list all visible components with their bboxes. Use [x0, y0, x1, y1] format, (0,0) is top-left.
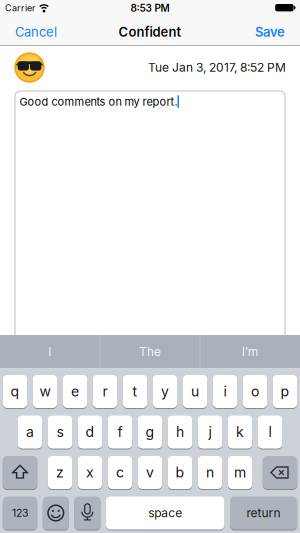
button[interactable]: The	[100, 335, 199, 368]
staticText: a	[26, 423, 34, 440]
button[interactable]: q	[3, 375, 27, 408]
staticText: f	[117, 423, 122, 440]
button[interactable]: l	[258, 415, 282, 448]
button[interactable]: Dictate	[74, 496, 100, 529]
button[interactable]: c	[108, 456, 132, 489]
staticText: I	[48, 344, 51, 359]
button[interactable]: o	[243, 375, 267, 408]
button[interactable]: y	[153, 375, 177, 408]
button[interactable]: I	[0, 335, 99, 368]
staticText: Carrier	[5, 3, 35, 13]
staticText: j	[208, 423, 211, 440]
staticText: r	[102, 383, 107, 400]
button[interactable]: f	[108, 415, 132, 448]
button[interactable]: s	[48, 415, 72, 448]
staticText: i	[223, 383, 226, 400]
staticText: o	[251, 383, 259, 400]
staticText: The	[139, 344, 161, 359]
button[interactable]: j	[198, 415, 222, 448]
staticText: w	[39, 383, 50, 400]
staticText: y	[161, 383, 169, 400]
button[interactable]: 123	[3, 496, 37, 529]
staticText: n	[206, 464, 214, 481]
button[interactable]: k	[228, 415, 252, 448]
button[interactable]: b	[168, 456, 192, 489]
button[interactable]: g	[138, 415, 162, 448]
button[interactable]: a	[18, 415, 42, 448]
staticText: e	[71, 383, 79, 400]
staticText: g	[145, 423, 154, 440]
button[interactable]: t	[123, 375, 147, 408]
staticText: c	[116, 464, 124, 481]
staticText: Good comments on my report.	[19, 95, 177, 108]
button[interactable]: w	[33, 375, 57, 408]
button[interactable]: I’m	[200, 335, 300, 368]
staticText: h	[176, 423, 184, 440]
button[interactable]: h	[168, 415, 192, 448]
button[interactable]: i	[213, 375, 237, 408]
staticText: s	[56, 423, 63, 440]
button[interactable]: d	[78, 415, 102, 448]
button[interactable]: z	[48, 456, 72, 489]
staticText: Tue Jan 3, 2017, 8:52 PM	[148, 60, 286, 75]
button[interactable]: Change mood emoji	[14, 52, 45, 83]
staticText: z	[56, 464, 64, 481]
staticText: Confident	[118, 24, 181, 40]
button[interactable]: space	[106, 496, 224, 529]
staticText: t	[132, 383, 137, 400]
staticText: d	[85, 423, 94, 440]
button[interactable]: return	[230, 496, 297, 529]
staticText: v	[146, 464, 154, 481]
button[interactable]: Emoji	[43, 496, 69, 529]
staticText: x	[86, 464, 94, 481]
staticText: Cancel	[15, 24, 57, 40]
button[interactable]: p	[273, 375, 297, 408]
staticText: m	[234, 464, 246, 481]
staticText: return	[247, 506, 281, 520]
button[interactable]: e	[63, 375, 87, 408]
button[interactable]: Shift	[3, 456, 37, 489]
button[interactable]: m	[228, 456, 252, 489]
staticText: b	[175, 464, 184, 481]
staticText: 8:53 PM	[130, 2, 169, 14]
staticText: Save	[255, 24, 285, 40]
button[interactable]: r	[93, 375, 117, 408]
staticText: I’m	[242, 344, 259, 359]
staticText: l	[268, 423, 271, 440]
staticText: u	[191, 383, 199, 400]
staticText: q	[10, 383, 19, 400]
button[interactable]: x	[78, 456, 102, 489]
staticText: space	[148, 506, 182, 520]
staticText: k	[236, 423, 244, 440]
staticText: p	[280, 383, 289, 400]
button[interactable]: n	[198, 456, 222, 489]
staticText: 123	[12, 507, 28, 519]
button[interactable]: Cancel	[0, 23, 57, 38]
button[interactable]: Delete	[263, 456, 297, 489]
button[interactable]: Save	[255, 23, 300, 38]
button[interactable]: u	[183, 375, 207, 408]
button[interactable]: v	[138, 456, 162, 489]
